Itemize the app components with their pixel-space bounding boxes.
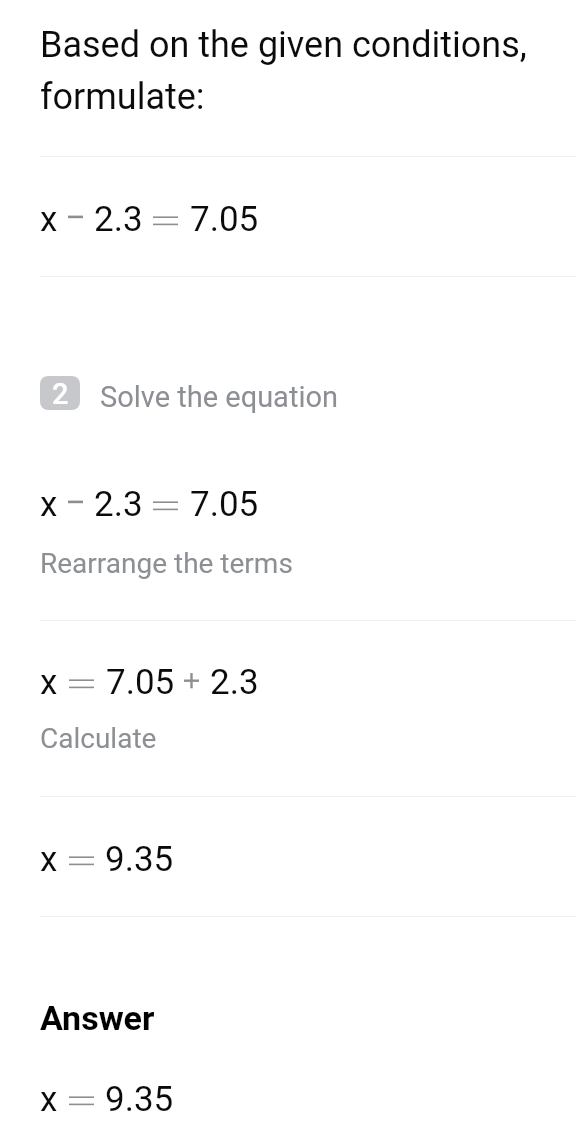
- staticText: x: [40, 1079, 58, 1120]
- staticText: 7.05: [190, 484, 259, 525]
- staticText: 2: [52, 377, 69, 410]
- staticText: 7.05: [190, 199, 259, 240]
- staticText: x: [40, 199, 58, 240]
- staticText: Based on the given conditions, formulate…: [40, 24, 540, 118]
- staticText: Rearrange the terms: [40, 547, 293, 580]
- staticText: 2.3: [94, 484, 143, 525]
- button[interactable]: x minus 2.3 equals 7.05, rearrange the t…: [0, 440, 576, 620]
- button[interactable]: x minus 2.3 equals 7.05: [0, 157, 576, 276]
- button[interactable]: 2: [40, 376, 338, 410]
- staticText: Answer: [40, 998, 155, 1038]
- staticText: 7.05: [106, 662, 175, 703]
- button[interactable]: x equals 9.35: [0, 797, 576, 916]
- staticText: x: [40, 839, 58, 880]
- button[interactable]: x equals 7.05 plus 2.3, calculate: [0, 621, 576, 796]
- staticText: Calculate: [40, 722, 157, 755]
- staticText: x: [40, 662, 58, 703]
- staticText: 2.3: [94, 199, 143, 240]
- staticText: 9.35: [105, 1079, 174, 1120]
- staticText: Solve the equation: [100, 380, 338, 414]
- staticText: 9.35: [105, 839, 174, 880]
- staticText: 2.3: [210, 662, 259, 703]
- staticText: x: [40, 484, 58, 525]
